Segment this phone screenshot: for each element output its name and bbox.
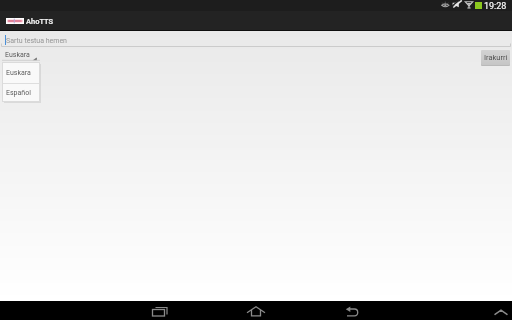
staticText: Euskara xyxy=(6,69,31,77)
button[interactable]: Sartu testua hemen xyxy=(0,33,512,47)
button[interactable]: Back xyxy=(338,301,364,320)
button[interactable]: Recents xyxy=(146,301,174,320)
button[interactable]: Euskara xyxy=(2,49,40,61)
button[interactable]: AhoTTS xyxy=(0,11,58,31)
staticText: Español xyxy=(6,89,31,97)
staticText: Irakurri xyxy=(484,53,508,62)
button[interactable]: Irakurri xyxy=(481,50,510,65)
staticText: AhoTTS xyxy=(26,17,54,26)
staticText: Euskara xyxy=(5,51,30,59)
button[interactable]: Home xyxy=(244,301,270,320)
button[interactable]: Expand xyxy=(490,301,512,320)
button[interactable]: Euskara xyxy=(3,63,39,83)
button[interactable]: Español xyxy=(3,84,39,101)
staticText: Sartu testua hemen xyxy=(6,37,67,45)
staticText: 19:28 xyxy=(484,1,507,12)
